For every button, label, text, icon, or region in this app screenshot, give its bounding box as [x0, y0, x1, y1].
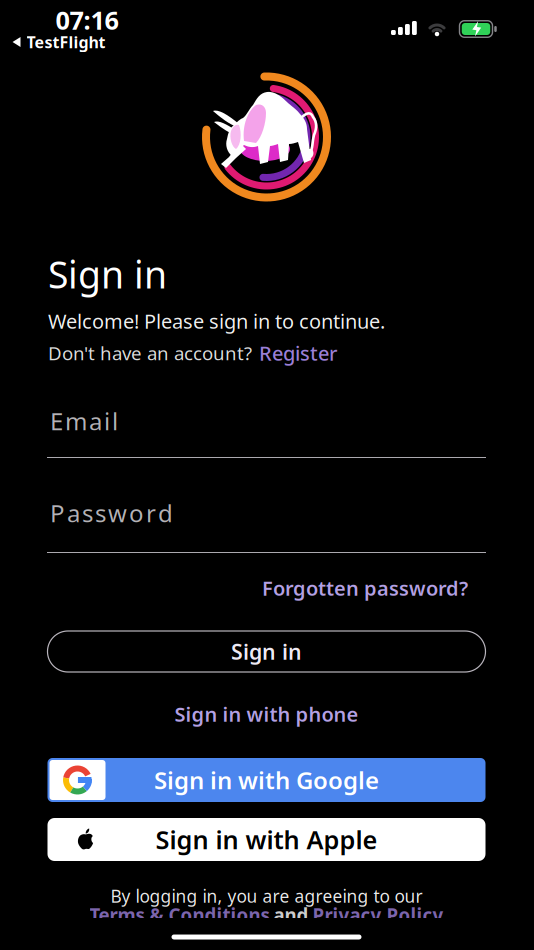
- staticText: Sign in with Apple: [155, 823, 377, 856]
- staticText: P a s s w o r d: [50, 497, 173, 529]
- staticText: Terms & Conditions: [89, 903, 269, 927]
- button[interactable]: Email: [47, 407, 486, 458]
- staticText: Sign in: [48, 249, 167, 299]
- staticText: Register: [259, 340, 337, 366]
- staticText: Welcome! Please sign in to continue.: [48, 308, 385, 334]
- staticText: Sign in: [231, 637, 302, 666]
- button[interactable]: Forgotten password?: [262, 575, 468, 601]
- button[interactable]: Password: [47, 499, 486, 553]
- staticText: 07:16: [55, 3, 118, 37]
- button[interactable]: Terms & Conditions: [89, 903, 443, 927]
- button[interactable]: Sign in: [47, 631, 485, 672]
- staticText: E m a i l: [50, 405, 118, 437]
- staticText: Forgotten password?: [262, 575, 468, 601]
- button[interactable]: Sign in with Google: [47, 758, 485, 802]
- button[interactable]: Sign in with phone: [174, 701, 358, 727]
- staticText: and: [273, 903, 308, 927]
- staticText: By logging in, you are agreeing to our: [110, 884, 422, 907]
- button[interactable]: Sign in with Apple: [47, 818, 485, 861]
- staticText: TestFlight: [26, 31, 105, 53]
- button[interactable]: Back to TestFlight: [12, 31, 105, 53]
- staticText: Privacy Policy: [312, 903, 443, 927]
- button[interactable]: Register: [259, 340, 337, 366]
- staticText: Don't have an account?: [48, 341, 252, 365]
- staticText: Sign in with phone: [174, 701, 358, 727]
- staticText: Sign in with Google: [154, 764, 379, 796]
